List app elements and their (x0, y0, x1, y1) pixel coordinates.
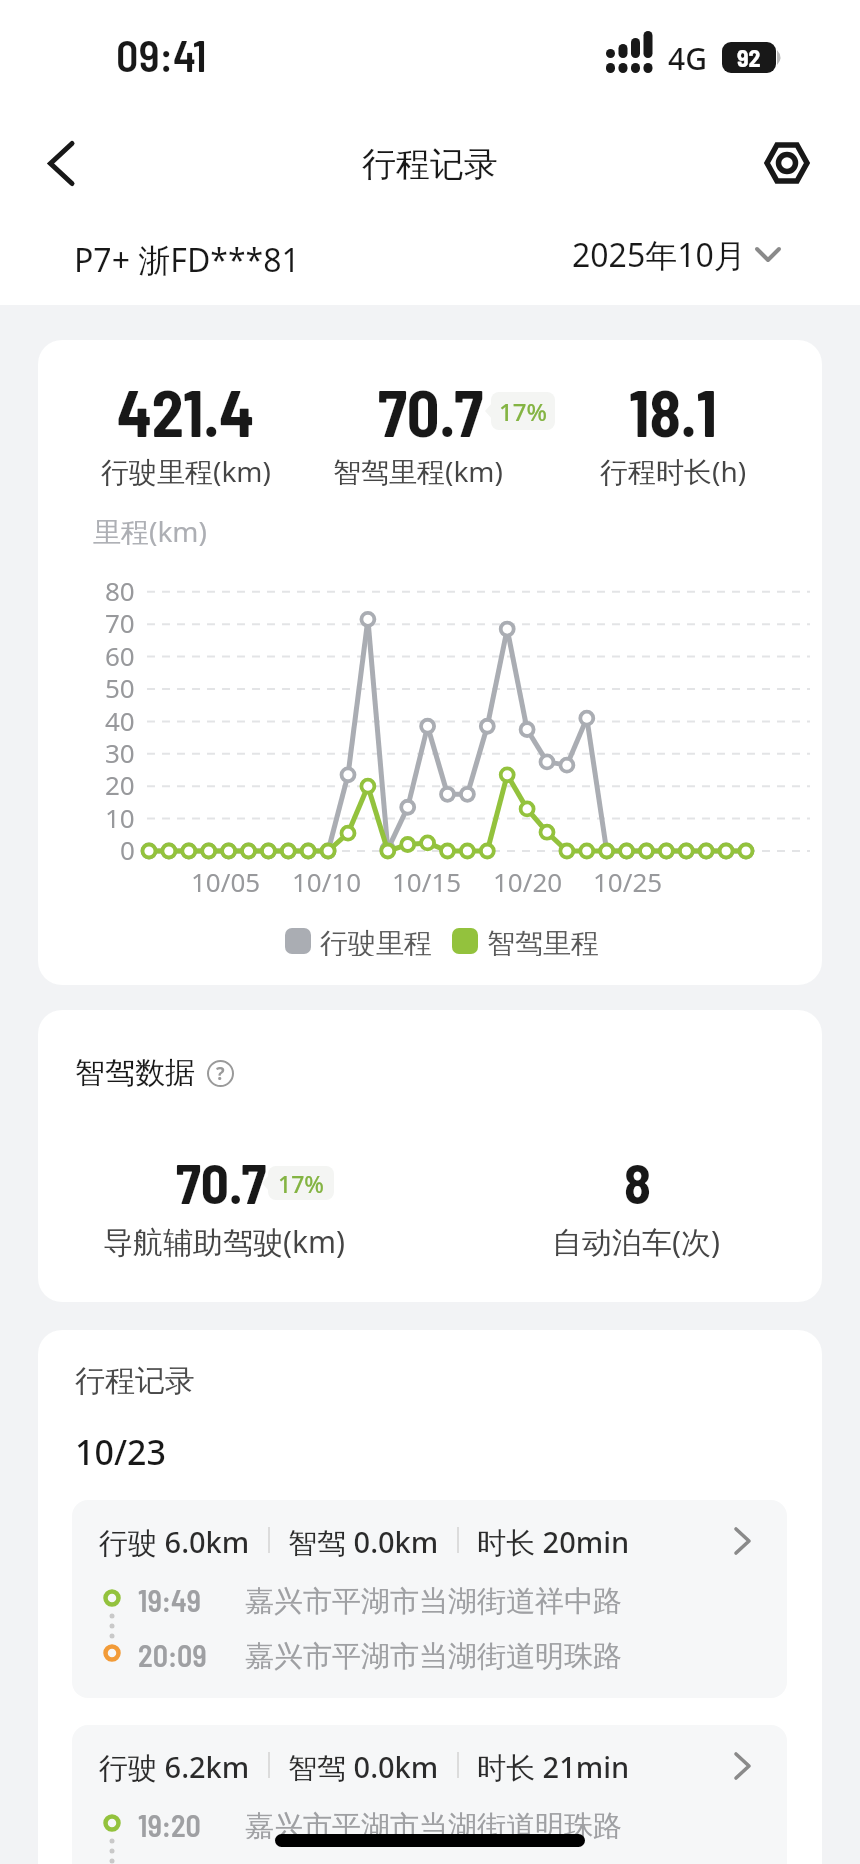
staticText: P7+ 浙FD***81 (74, 238, 300, 282)
staticText: 10/23 (75, 1429, 166, 1475)
staticText: 19:20 (138, 1807, 201, 1843)
staticText: 30 (105, 735, 135, 770)
staticText: 里程(km) (93, 512, 207, 550)
button[interactable] (758, 134, 816, 192)
staticText: 行程记录 (75, 1362, 195, 1400)
staticText: 10/05 (191, 864, 261, 899)
staticText: 时长 21min (477, 1747, 630, 1783)
staticText: 智驾里程 (487, 926, 599, 956)
staticText: 8 (624, 1149, 651, 1215)
button[interactable]: 行驶 6.2km (72, 1725, 787, 1864)
staticText: 智驾 0.0km (288, 1522, 439, 1558)
staticText: 70.7 (378, 373, 484, 450)
staticText: 自动泊车(次) (552, 1221, 720, 1262)
staticText: 50 (105, 670, 135, 705)
staticText: 17% (499, 395, 547, 428)
staticText: 嘉兴市平湖市当湖街道祥中路 (245, 1583, 622, 1620)
staticText: 行程时长(h) (600, 452, 747, 490)
staticText: 10/10 (292, 864, 362, 899)
staticText: 70 (105, 605, 135, 640)
staticText: 0 (120, 832, 135, 867)
staticText: 09:41 (116, 28, 207, 81)
staticText: 421.4 (117, 373, 255, 450)
staticText: 嘉兴市平湖市当湖街道明珠路 (245, 1808, 622, 1845)
button[interactable]: 2025年10月 (572, 230, 781, 280)
staticText: 智驾数据 (75, 1054, 195, 1092)
staticText: 智驾 0.0km (288, 1747, 439, 1783)
staticText: 70.7 (176, 1149, 267, 1215)
staticText: 17% (278, 1168, 324, 1199)
staticText: 行程记录 (362, 143, 498, 186)
staticText: 嘉兴市平湖市当湖街道明珠路 (245, 1638, 622, 1675)
staticText: 智驾里程(km) (333, 452, 503, 490)
staticText: 4G (668, 38, 707, 79)
staticText: 20 (105, 767, 135, 802)
staticText: 80 (105, 573, 135, 608)
staticText: 行驶里程 (320, 926, 432, 956)
staticText: ? (216, 1061, 225, 1086)
staticText: 10 (105, 800, 135, 835)
button[interactable] (32, 136, 90, 190)
staticText: 60 (105, 638, 135, 673)
staticText: 20:09 (138, 1637, 207, 1673)
staticText: 40 (105, 703, 135, 738)
staticText: 行驶 6.2km (99, 1747, 250, 1783)
staticText: 导航辅助驾驶(km) (103, 1221, 346, 1262)
staticText: 10/20 (493, 864, 563, 899)
staticText: 时长 20min (477, 1522, 630, 1558)
staticText: 18.1 (629, 373, 717, 450)
staticText: 2025年10月 (572, 233, 746, 277)
staticText: 19:49 (138, 1582, 201, 1618)
staticText: 10/25 (593, 864, 663, 899)
staticText: 92 (737, 43, 761, 72)
staticText: 10/15 (392, 864, 462, 899)
staticText: 行驶里程(km) (101, 452, 271, 490)
button[interactable]: 行驶 6.0km (72, 1500, 787, 1698)
staticText: 行驶 6.0km (99, 1522, 250, 1558)
